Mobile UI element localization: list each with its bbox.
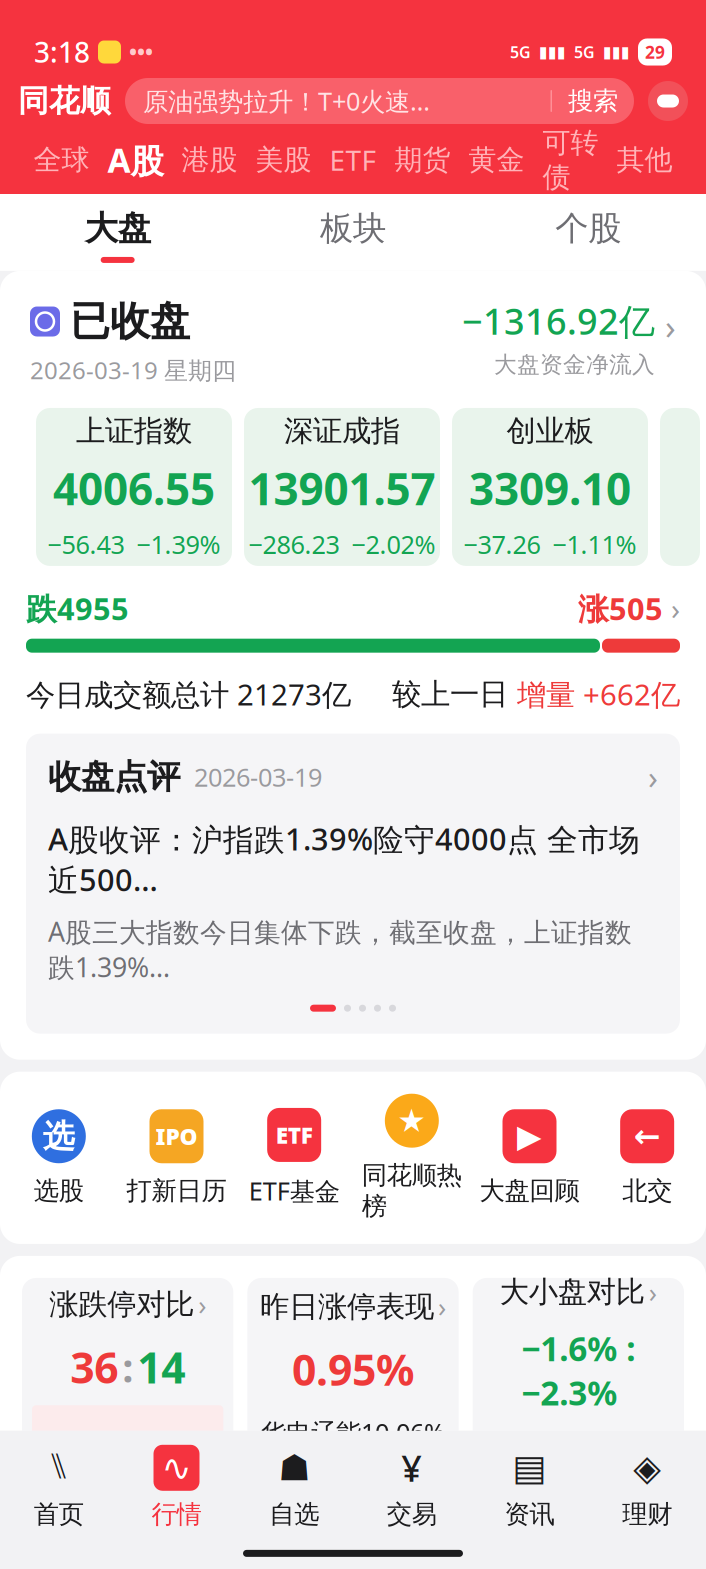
staticText: 14 — [137, 1339, 185, 1395]
staticText: ⑊ — [48, 1450, 70, 1485]
staticText: 期货 — [394, 143, 450, 177]
staticText: 大小盘对比 — [500, 1274, 645, 1310]
staticText: 美股 — [255, 143, 311, 177]
staticText: 深证成指 — [284, 413, 400, 449]
button[interactable]: 黄金 — [459, 140, 533, 180]
staticText: −1.39% — [136, 527, 220, 561]
staticText: 自选 — [269, 1499, 319, 1530]
staticText: 理财 — [622, 1499, 672, 1530]
button[interactable]: 涨跌停对比 — [22, 1278, 233, 1460]
button[interactable]: 创业板 — [452, 408, 648, 566]
button[interactable]: 深证成指 — [244, 408, 440, 566]
button[interactable]: ETF — [235, 1108, 353, 1208]
button[interactable]: ▶ — [471, 1109, 588, 1206]
button[interactable]: ETF — [320, 140, 385, 180]
staticText: 今日成交额总计 21273亿 — [26, 675, 351, 714]
button[interactable]: ◈ — [588, 1445, 706, 1530]
staticText: 同花顺热榜 — [362, 1160, 462, 1222]
button[interactable]: 上证指数 — [36, 408, 232, 566]
staticText: 全球 — [33, 143, 89, 177]
staticText: ••• — [129, 38, 153, 66]
staticText: ▮▮▮ — [539, 43, 566, 61]
staticText: › — [671, 589, 680, 628]
button[interactable]: 大小盘对比 — [473, 1278, 684, 1460]
staticText: : — [122, 1340, 133, 1393]
staticText: ETF — [329, 141, 376, 179]
staticText: › — [648, 756, 658, 798]
button[interactable]: ∿ — [118, 1445, 235, 1530]
staticText: › — [438, 1289, 446, 1324]
staticText: 黄金 — [468, 143, 524, 177]
button[interactable]: A股 — [98, 140, 172, 180]
staticText: ETF基金 — [249, 1174, 340, 1208]
staticText: 选股 — [34, 1175, 84, 1206]
button[interactable]: 收盘点评 — [26, 734, 680, 1034]
staticText: 其他 — [616, 143, 672, 177]
staticText: −1.11% — [552, 527, 636, 561]
staticText: 打新日历 — [126, 1175, 226, 1206]
button[interactable]: 选 — [0, 1109, 118, 1206]
staticText: 涨跌停对比 — [49, 1287, 194, 1323]
staticText: 13901.57 — [248, 459, 435, 517]
staticText: ▤ — [512, 1447, 546, 1488]
button[interactable]: ▤ — [471, 1445, 588, 1530]
button[interactable]: ☗ — [235, 1445, 353, 1530]
button[interactable]: 板块 — [235, 208, 471, 263]
staticText: 港股 — [181, 143, 237, 177]
staticText: 4006.55 — [53, 459, 215, 517]
staticText: 首页 — [34, 1499, 84, 1530]
staticText: ▮▮▮ — [603, 43, 630, 61]
button[interactable]: 期货 — [385, 140, 459, 180]
staticText: 资讯 — [504, 1499, 554, 1530]
staticText: ¥ — [401, 1444, 422, 1492]
button[interactable]: Assistant — [648, 81, 688, 121]
button[interactable]: 全球 — [24, 140, 98, 180]
staticText: A股三大指数今日集体下跌，截至收盘，上证指数跌1.39%… — [48, 914, 632, 985]
staticText: 2026-03-19 星期四 — [30, 354, 236, 386]
staticText: A股 — [107, 138, 163, 182]
staticText: › — [649, 1274, 657, 1310]
button[interactable]: ¥ — [353, 1445, 471, 1530]
staticText: 原油强势拉升！T+0火速… — [143, 84, 430, 118]
staticText: 行情 — [151, 1499, 201, 1530]
staticText: 5G — [574, 41, 595, 63]
button[interactable]: 原油强势拉升！T+0火速… — [125, 78, 634, 124]
button[interactable]: IPO — [118, 1109, 235, 1206]
staticText: −2.02% — [351, 527, 435, 561]
button[interactable]: 昨日涨停表现 — [247, 1278, 459, 1460]
staticText: 较上一日 — [392, 676, 517, 712]
staticText: ▶ — [517, 1118, 542, 1154]
staticText: −286.23 — [248, 527, 339, 561]
button[interactable]: 其他 — [607, 140, 681, 180]
staticText: 29 — [645, 40, 665, 63]
staticText: 选 — [43, 1117, 75, 1156]
staticText: 涨505 — [578, 588, 663, 629]
button[interactable]: ← — [588, 1109, 706, 1206]
staticText: 收盘点评 — [48, 756, 180, 797]
button[interactable]: 可转债 — [533, 140, 607, 180]
staticText: 大盘资金净流入 — [494, 351, 655, 378]
staticText: 个股 — [555, 208, 621, 249]
staticText: 2026-03-19 — [194, 760, 322, 794]
staticText: 5G — [510, 41, 531, 63]
button[interactable]: 大盘 — [0, 208, 235, 263]
button[interactable]: ⑊ — [0, 1445, 118, 1530]
staticText: 36 — [70, 1339, 118, 1395]
staticText: › — [665, 303, 676, 349]
staticText: 大盘回顾 — [479, 1175, 579, 1206]
staticText: 可转债 — [542, 126, 598, 194]
staticText: 昨日涨停表现 — [260, 1289, 434, 1325]
staticText: 大盘 — [85, 208, 151, 249]
staticText: ∿ — [161, 1447, 191, 1488]
button[interactable]: 已收盘 — [0, 271, 706, 408]
button[interactable]: 个股 — [471, 208, 706, 263]
button[interactable]: ★ — [353, 1094, 471, 1222]
staticText: 已收盘 — [70, 297, 190, 346]
button[interactable]: 美股 — [246, 140, 320, 180]
staticText: 上证指数 — [76, 413, 192, 449]
staticText: 交易 — [387, 1499, 437, 1530]
staticText: −37.26 — [463, 527, 540, 561]
staticText: 3309.10 — [469, 459, 631, 517]
staticText: 华电辽能10.06% — [261, 1415, 445, 1449]
button[interactable]: 港股 — [172, 140, 246, 180]
